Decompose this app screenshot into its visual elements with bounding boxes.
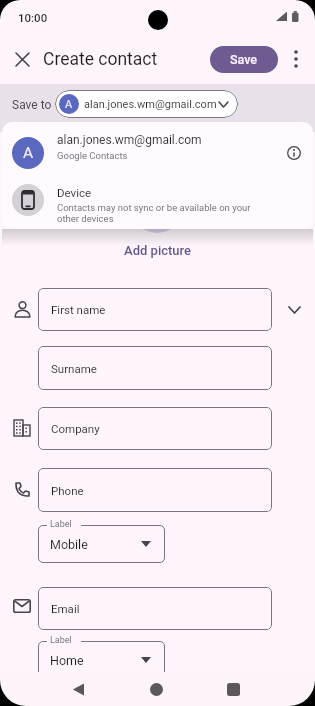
button[interactable]: A [2, 122, 313, 180]
button[interactable]: Company [38, 407, 272, 450]
staticText: Email [51, 602, 80, 615]
staticText: Save [230, 52, 258, 67]
staticText: Device [57, 186, 92, 199]
button[interactable]: Phone [38, 468, 272, 512]
staticText: Add picture [124, 243, 192, 258]
button[interactable]: Save [210, 46, 278, 73]
staticText: A [23, 144, 34, 162]
staticText: other devices [57, 213, 114, 224]
button[interactable] [280, 296, 308, 324]
staticText: Phone [51, 484, 84, 497]
staticText: Home [50, 653, 84, 668]
staticText: Label [50, 519, 72, 530]
staticText: 10:00 [18, 11, 48, 24]
button[interactable] [282, 45, 310, 73]
button[interactable] [141, 674, 171, 704]
button[interactable]: Email [38, 587, 272, 630]
button[interactable]: A [55, 90, 238, 118]
staticText: Contacts may not sync or be available on… [57, 202, 251, 213]
staticText: Save to [12, 98, 52, 112]
button[interactable]: Home [38, 641, 165, 679]
staticText: A [65, 98, 73, 111]
button[interactable]: Mobile [38, 525, 165, 563]
staticText: First name [51, 303, 106, 316]
staticText: Mobile [50, 537, 88, 552]
staticText: Company [51, 422, 100, 435]
button[interactable] [218, 674, 248, 704]
staticText: Google Contacts [57, 150, 128, 161]
button[interactable] [63, 674, 93, 704]
staticText: Create contact [43, 49, 158, 70]
staticText: Surname [51, 362, 97, 375]
button[interactable]: Surname [38, 346, 272, 390]
button[interactable]: First name [38, 288, 272, 331]
staticText: alan.jones.wm@gmail.com [57, 133, 202, 147]
button[interactable] [8, 45, 36, 73]
staticText: Label [50, 635, 72, 646]
staticText: alan.jones.wm@gmail.com [84, 98, 217, 111]
button[interactable]: Device [2, 184, 313, 229]
button[interactable]: Add picture [124, 243, 192, 258]
